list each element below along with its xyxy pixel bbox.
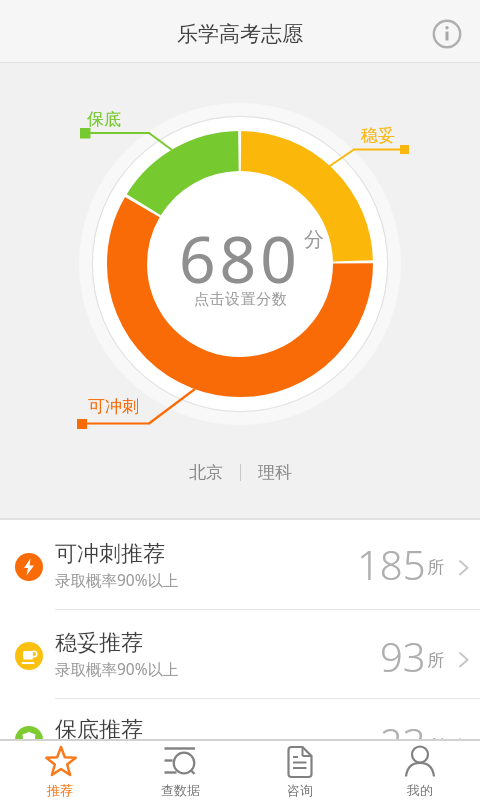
- staticText: 点击设置分数: [194, 290, 287, 309]
- button[interactable]: [0, 63, 480, 518]
- staticText: 可冲刺: [88, 396, 139, 417]
- button[interactable]: 我的: [360, 741, 480, 800]
- staticText: 所: [427, 650, 444, 671]
- staticText: 录取概率90%以上: [55, 745, 179, 766]
- staticText: 录取概率90%以上: [55, 658, 179, 679]
- staticText: 保底推荐: [55, 716, 143, 744]
- staticText: 所: [427, 736, 444, 757]
- staticText: 稳妥推荐: [55, 629, 143, 657]
- button[interactable]: 理科: [258, 462, 292, 483]
- staticText: 稳妥: [361, 125, 395, 146]
- staticText: 咨询: [287, 782, 313, 798]
- staticText: 93: [380, 629, 426, 683]
- staticText: 保底: [87, 109, 121, 130]
- button[interactable]: 稳妥推荐: [0, 610, 480, 698]
- staticText: 可冲刺推荐: [55, 540, 165, 568]
- button[interactable]: 咨询: [240, 741, 360, 800]
- staticText: 我的: [407, 782, 433, 798]
- staticText: 录取概率90%以上: [55, 569, 179, 590]
- button[interactable]: [433, 20, 461, 48]
- button[interactable]: 推荐: [0, 741, 120, 800]
- staticText: 分: [304, 227, 324, 252]
- staticText: 推荐: [47, 782, 73, 798]
- button[interactable]: 可冲刺推荐: [0, 514, 480, 609]
- staticText: 185: [357, 537, 426, 591]
- staticText: 23: [380, 715, 426, 769]
- staticText: 乐学高考志愿: [177, 21, 303, 47]
- button[interactable]: 保底推荐: [0, 696, 480, 784]
- staticText: 680: [179, 215, 301, 302]
- staticText: 所: [427, 557, 444, 578]
- button[interactable]: 查数据: [120, 741, 240, 800]
- staticText: 查数据: [161, 782, 200, 798]
- button[interactable]: 北京: [189, 462, 223, 483]
